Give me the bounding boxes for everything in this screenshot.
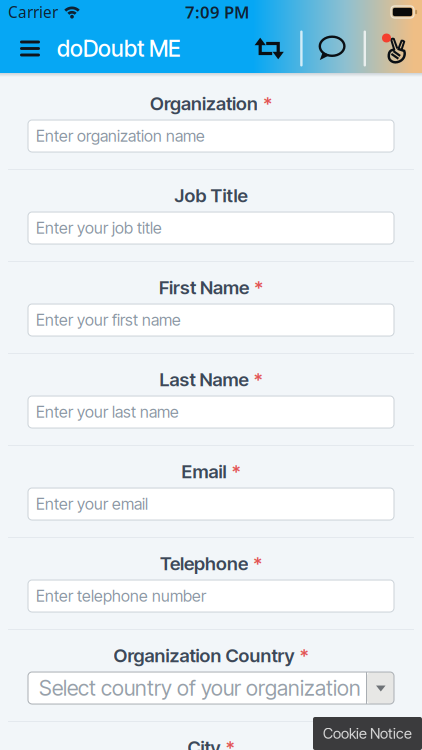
button[interactable]: Notifications (381, 33, 411, 63)
button[interactable]: Email (28, 488, 394, 520)
button[interactable]: Telephone (28, 580, 394, 612)
button[interactable]: Organization (28, 120, 394, 152)
button[interactable]: First Name (28, 304, 394, 336)
button[interactable]: Last Name (28, 396, 394, 428)
staticText: Last Name (159, 368, 248, 391)
staticText: Enter your job title (36, 218, 162, 238)
staticText: Organization (150, 92, 258, 115)
staticText: Cookie Notice (323, 725, 412, 742)
staticText: * (253, 552, 262, 575)
staticText: Enter telephone number (36, 586, 206, 606)
staticText: * (253, 368, 262, 391)
button[interactable]: Cookie Notice (313, 717, 422, 750)
staticText: Enter your first name (36, 310, 181, 330)
staticText: * (231, 460, 240, 483)
staticText: 7:09 PM (185, 1, 249, 23)
staticText: Enter your last name (36, 402, 179, 422)
staticText: Organization Country (113, 644, 294, 667)
staticText: Enter your email (36, 494, 148, 514)
staticText: City (187, 736, 220, 750)
staticText: Job Title (174, 184, 247, 207)
staticText: Carrier (8, 2, 58, 22)
staticText: Email (181, 460, 226, 483)
staticText: Select country of your organization (39, 675, 361, 701)
staticText: * (263, 92, 272, 115)
staticText: Enter organization name (36, 126, 205, 146)
staticText: Telephone (160, 552, 248, 575)
staticText: doDoubt ME (57, 35, 181, 62)
staticText: * (254, 276, 263, 299)
staticText: * (299, 644, 308, 667)
button[interactable]: Organization Country (28, 672, 394, 704)
button[interactable]: Chat (319, 35, 347, 61)
button[interactable]: Repost (252, 36, 286, 60)
staticText: * (225, 736, 234, 750)
staticText: First Name (159, 276, 249, 299)
button[interactable]: Menu (19, 37, 41, 59)
button[interactable]: Job Title (28, 212, 394, 244)
